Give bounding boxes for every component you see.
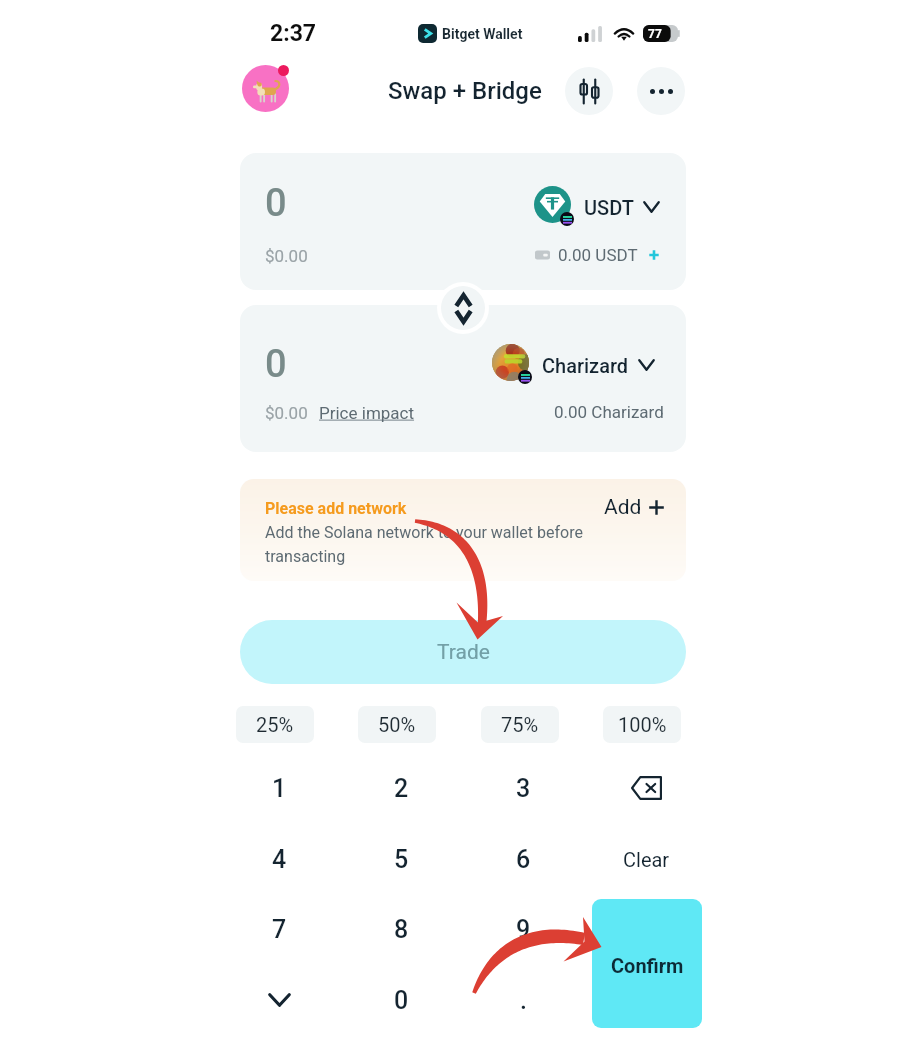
staticText: Please add network — [265, 499, 407, 518]
button[interactable]: More options — [637, 67, 685, 115]
staticText: 50% — [378, 713, 416, 736]
button[interactable]: 0 — [240, 153, 686, 290]
staticText: Charizard — [542, 354, 629, 377]
staticText: 2:37 — [270, 20, 317, 47]
button[interactable]: 8 — [345, 895, 457, 963]
button[interactable]: 50% — [358, 706, 436, 743]
staticText: 7 — [272, 915, 287, 944]
staticText: 25% — [256, 713, 294, 736]
button[interactable]: 9 — [467, 895, 579, 963]
staticText: Trade — [437, 640, 490, 665]
button[interactable]: 0 — [345, 966, 457, 1034]
button[interactable]: 25% — [236, 706, 314, 743]
button[interactable]: Chart — [565, 67, 613, 115]
button[interactable]: 75% — [481, 706, 559, 743]
staticText: 4 — [272, 845, 287, 874]
button[interactable]: 7 — [223, 895, 335, 963]
staticText: 9 — [516, 915, 531, 944]
staticText: Add the Solana network to your wallet be… — [265, 523, 583, 566]
button[interactable]: 2 — [345, 754, 457, 822]
staticText: 75% — [501, 713, 539, 736]
staticText: USDT — [584, 196, 634, 219]
button[interactable]: 100% — [603, 706, 681, 743]
button[interactable]: Profile — [240, 63, 292, 117]
staticText: Confirm — [611, 954, 684, 977]
button[interactable]: 5 — [345, 825, 457, 893]
staticText: $0.00 — [265, 246, 308, 266]
button[interactable]: 6 — [467, 825, 579, 893]
staticText: Price impact — [319, 403, 415, 423]
button[interactable]: Switch tokens — [441, 286, 485, 330]
staticText: 77 — [648, 27, 662, 41]
staticText: . — [520, 986, 527, 1015]
staticText: 3 — [516, 774, 531, 803]
staticText: 0.00 Charizard — [554, 402, 664, 422]
staticText: 0.00 USDT — [558, 245, 638, 265]
button[interactable]: 4 — [223, 825, 335, 893]
staticText: 8 — [394, 915, 409, 944]
staticText: 6 — [516, 845, 531, 874]
button[interactable]: 3 — [467, 754, 579, 822]
staticText: Swap + Bridge — [388, 77, 542, 105]
button[interactable]: . — [467, 966, 579, 1034]
staticText: 1 — [272, 774, 287, 803]
button[interactable]: Backspace — [590, 754, 702, 822]
staticText: 0 — [265, 342, 287, 387]
button[interactable]: Trade — [240, 620, 686, 684]
staticText: $0.00 — [265, 403, 308, 423]
staticText: 2 — [394, 774, 409, 803]
staticText: 5 — [394, 845, 409, 874]
staticText: Add — [604, 495, 642, 520]
button[interactable]: 1 — [223, 754, 335, 822]
staticText: 0 — [265, 181, 287, 226]
staticText: 0 — [394, 986, 409, 1015]
staticText: 100% — [618, 713, 667, 736]
button[interactable]: Clear — [590, 825, 702, 893]
button[interactable]: Collapse keypad — [223, 966, 335, 1034]
button[interactable]: 0 — [240, 305, 686, 452]
staticText: Bitget Wallet — [442, 26, 523, 42]
button[interactable]: Confirm — [592, 899, 702, 1028]
staticText: Clear — [623, 848, 670, 871]
